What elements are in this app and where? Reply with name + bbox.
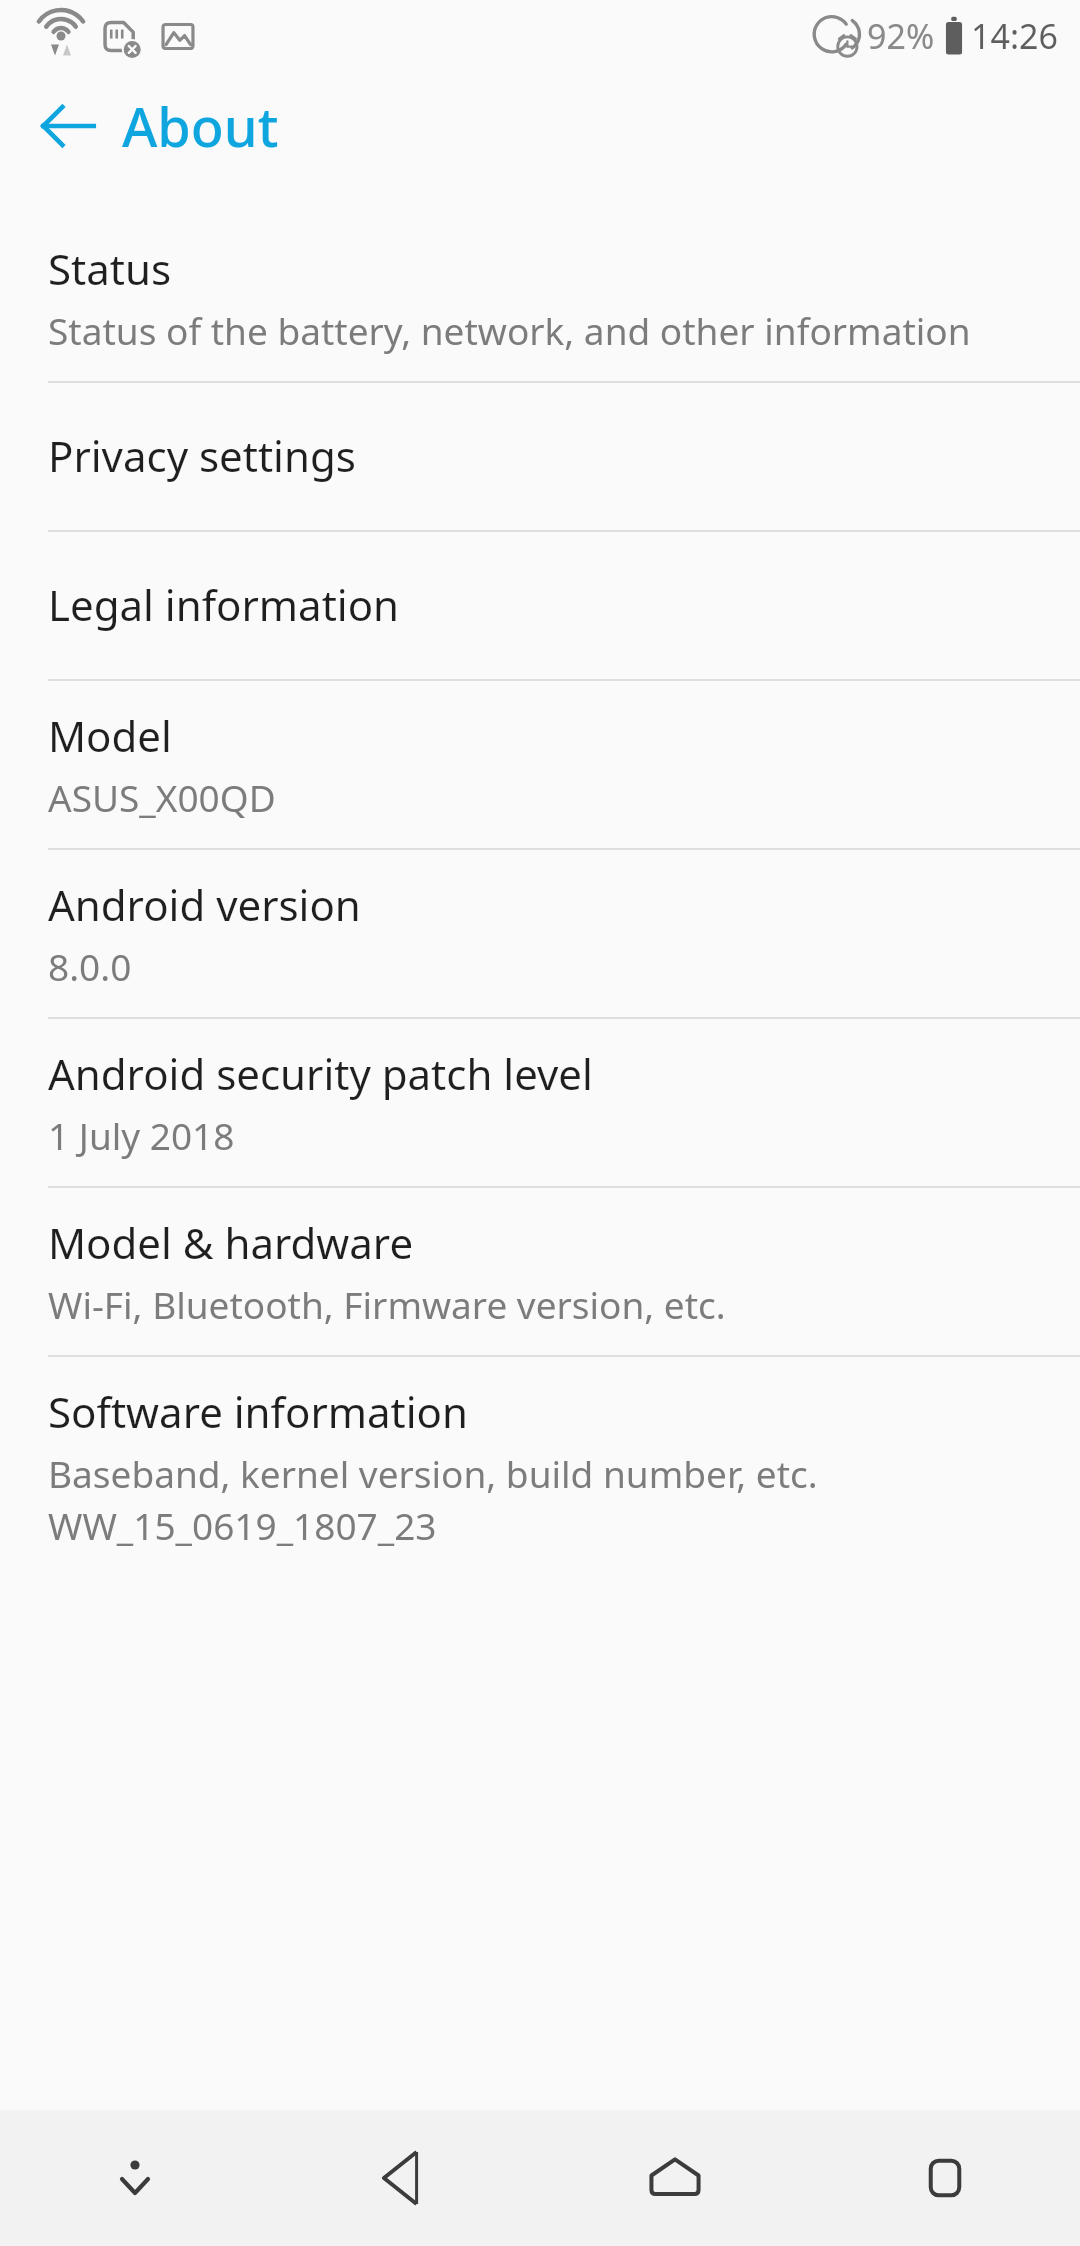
button[interactable]: Recents [810, 2110, 1080, 2246]
staticText: 8.0.0 [48, 941, 132, 991]
button[interactable]: Status [0, 214, 1080, 381]
staticText: Wi-Fi, Bluetooth, Firmware version, etc. [48, 1279, 726, 1329]
button[interactable]: Android version [0, 850, 1080, 1017]
staticText: Android version [48, 876, 361, 933]
staticText: Model & hardware [48, 1214, 414, 1271]
button[interactable]: Hide navigation bar [0, 2110, 270, 2246]
button[interactable]: Back [270, 2110, 540, 2246]
staticText: Privacy settings [48, 427, 356, 484]
button[interactable]: Legal information [0, 532, 1080, 679]
staticText: Baseband, kernel version, build number, … [48, 1448, 818, 1498]
staticText: WW_15_0619_1807_23 [48, 1500, 437, 1550]
button[interactable]: Privacy settings [0, 383, 1080, 530]
staticText: Legal information [48, 576, 400, 633]
staticText: Status [48, 240, 172, 297]
button[interactable]: Android security patch level [0, 1019, 1080, 1186]
button[interactable]: Software information [0, 1357, 1080, 1576]
staticText: Model [48, 707, 172, 764]
staticText: Software information [48, 1383, 468, 1440]
staticText: 14:26 [971, 13, 1058, 59]
staticText: ASUS_X00QD [48, 772, 276, 822]
staticText: 92% [867, 13, 935, 59]
staticText: 1 July 2018 [48, 1110, 235, 1160]
staticText: About [122, 89, 279, 163]
button[interactable]: Back [22, 80, 114, 172]
button[interactable]: Model & hardware [0, 1188, 1080, 1355]
staticText: Status of the battery, network, and othe… [48, 305, 971, 355]
staticText: Android security patch level [48, 1045, 593, 1102]
button[interactable]: Model [0, 681, 1080, 848]
button[interactable]: Home [540, 2110, 810, 2246]
